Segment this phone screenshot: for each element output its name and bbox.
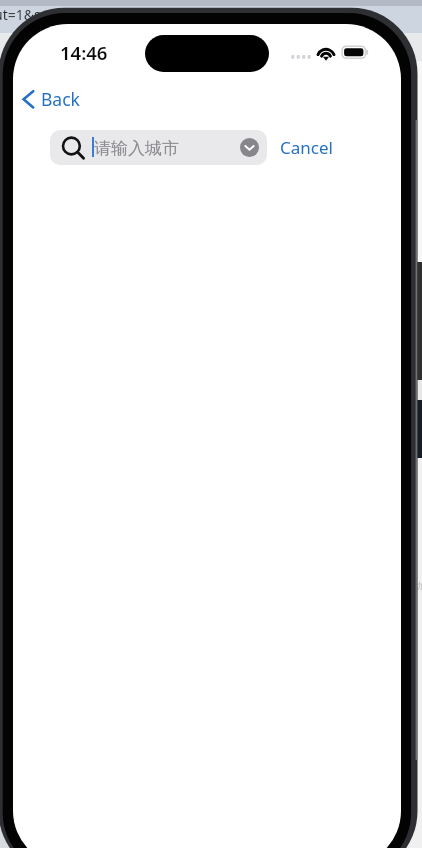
- button[interactable]: Back: [22, 88, 80, 112]
- staticText: Cancel: [280, 136, 333, 159]
- button[interactable]: Cancel: [280, 136, 333, 159]
- button[interactable]: Clear search: [240, 138, 259, 157]
- staticText: Back: [41, 87, 80, 111]
- staticText: ut=1&sp: [0, 5, 50, 24]
- staticText: 14:46: [60, 40, 108, 65]
- button[interactable]: 请输入城市: [50, 130, 267, 165]
- staticText: 幼: [414, 580, 422, 591]
- staticText: 请输入城市: [94, 138, 179, 159]
